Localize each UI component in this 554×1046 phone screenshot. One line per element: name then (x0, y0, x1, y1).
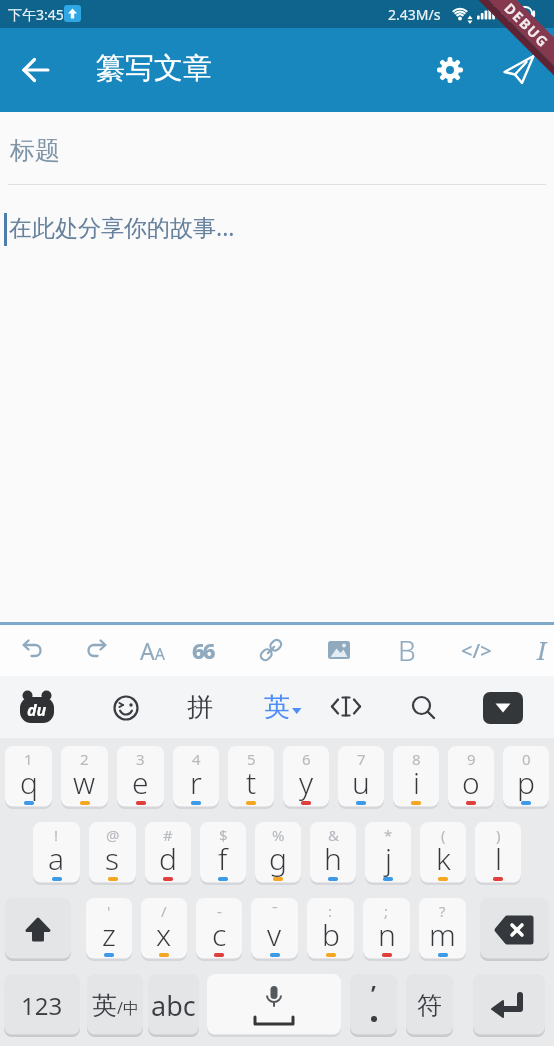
button[interactable]: ) (475, 822, 521, 885)
button[interactable] (480, 898, 549, 961)
staticText: u (352, 762, 370, 803)
staticText: i (413, 762, 420, 803)
staticText: s (105, 838, 120, 879)
button[interactable] (473, 974, 545, 1037)
staticText: 9 (467, 749, 476, 769)
staticText: abc (151, 987, 196, 1024)
button[interactable]: 5 (228, 746, 274, 809)
button[interactable]: : (307, 898, 354, 961)
button[interactable]: ? (419, 898, 466, 961)
staticText: 英/中 (92, 990, 139, 1021)
button[interactable]: B (385, 628, 429, 672)
staticText: % (272, 825, 285, 845)
button[interactable]: 0 (503, 746, 549, 809)
button[interactable]: 4 (173, 746, 219, 809)
button[interactable] (9, 628, 53, 672)
button[interactable]: # (145, 822, 191, 885)
staticText: h (324, 838, 342, 879)
staticText: 2 (80, 749, 89, 769)
button[interactable] (317, 628, 361, 672)
button[interactable]: AA (130, 628, 174, 672)
staticText: m (429, 914, 456, 955)
button[interactable] (426, 46, 474, 94)
button[interactable]: abc (148, 974, 199, 1037)
button[interactable]: </> (454, 628, 498, 672)
button[interactable]: ( (420, 822, 466, 885)
button[interactable] (111, 693, 141, 723)
staticText: d (159, 838, 177, 879)
button[interactable]: 符 (406, 974, 453, 1037)
staticText: r (190, 762, 202, 803)
button[interactable]: * (365, 822, 411, 885)
button[interactable]: 6 (283, 746, 329, 809)
button[interactable]: & (310, 822, 356, 885)
staticText: 符 (417, 990, 442, 1021)
button[interactable] (329, 693, 363, 721)
button[interactable] (12, 46, 60, 94)
button[interactable]: 66 (181, 628, 225, 672)
staticText: x (156, 914, 172, 955)
button[interactable] (207, 974, 341, 1037)
staticText: - (217, 901, 222, 921)
button[interactable]: ! (33, 822, 80, 885)
staticText: * (384, 825, 393, 845)
staticText: q (20, 762, 38, 803)
staticText: I (537, 633, 547, 667)
button[interactable]: 3 (117, 746, 164, 809)
button[interactable]: I (520, 628, 554, 672)
button[interactable] (409, 693, 439, 723)
button[interactable] (76, 628, 120, 672)
button[interactable]: $ (200, 822, 246, 885)
button[interactable]: 8 (393, 746, 439, 809)
staticText: ) (496, 825, 501, 845)
staticText: ( (441, 825, 446, 845)
staticText: 66 (192, 635, 214, 665)
staticText: f (218, 838, 228, 879)
button[interactable]: % (255, 822, 301, 885)
button[interactable] (5, 898, 71, 961)
button[interactable]: / (141, 898, 187, 961)
button[interactable]: 2 (61, 746, 108, 809)
button[interactable]: @ (89, 822, 136, 885)
staticText: : (328, 901, 333, 921)
staticText: 7 (357, 749, 366, 769)
staticText: 6 (302, 749, 311, 769)
staticText: n (378, 914, 396, 955)
button[interactable] (249, 628, 293, 672)
staticText: # (163, 825, 173, 845)
button[interactable]: ; (363, 898, 410, 961)
button[interactable]: 英 (252, 681, 314, 733)
button[interactable]: 7 (338, 746, 384, 809)
button[interactable]: 拼 (174, 681, 226, 733)
staticText: v (267, 914, 282, 955)
staticText: 3 (136, 749, 145, 769)
staticText: 5 (247, 749, 256, 769)
staticText: ? (439, 901, 446, 921)
staticText: ’ (371, 977, 376, 1010)
staticText: 4 (192, 749, 201, 769)
staticText: k (436, 838, 451, 879)
staticText: ! (54, 825, 59, 845)
button[interactable]: 1 (5, 746, 52, 809)
staticText: AA (140, 635, 165, 666)
staticText: e (132, 762, 149, 803)
staticText: / (161, 901, 167, 921)
button[interactable]: ' (86, 898, 132, 961)
button[interactable]: 123 (4, 974, 80, 1037)
staticText: o (462, 762, 480, 803)
button[interactable]: - (196, 898, 242, 961)
button[interactable] (495, 46, 543, 94)
button[interactable]: du (18, 689, 56, 727)
staticText: 123 (21, 989, 63, 1022)
staticText: b (322, 914, 340, 955)
staticText: c (212, 914, 227, 955)
button[interactable]: ’ (350, 974, 397, 1037)
button[interactable]: 9 (448, 746, 494, 809)
staticText: $ (219, 825, 228, 845)
button[interactable]: ˉ (251, 898, 298, 961)
staticText: p (517, 762, 535, 803)
button[interactable] (483, 692, 523, 724)
staticText: 0 (522, 749, 531, 769)
staticText: w (73, 762, 96, 803)
button[interactable]: 英/中 (87, 974, 143, 1037)
